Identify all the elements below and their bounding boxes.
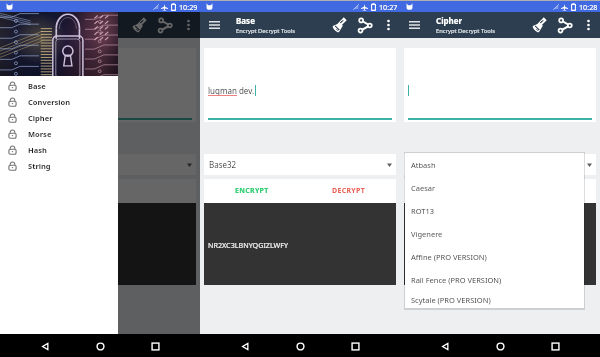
button[interactable]: Back: [435, 336, 455, 356]
staticText: Conversion: [28, 97, 71, 107]
staticText: ROT13: [411, 206, 435, 216]
button[interactable]: Back: [235, 336, 255, 356]
staticText: String: [28, 161, 51, 171]
staticText: Caesar: [411, 183, 436, 193]
staticText: Morse: [28, 129, 52, 139]
staticText: Encrypt Decrypt Tools: [236, 27, 296, 35]
staticText: Cipher: [436, 15, 463, 26]
button[interactable]: [100, 179, 196, 203]
staticText: Base32: [209, 159, 237, 170]
button[interactable]: Clear: [329, 15, 349, 35]
button[interactable]: DECRYPT: [500, 179, 596, 203]
button[interactable]: Open navigation drawer: [205, 16, 223, 34]
button[interactable]: Share: [555, 15, 575, 35]
button[interactable]: Vigenere: [405, 222, 584, 245]
button[interactable]: More options: [580, 17, 596, 33]
button[interactable]: String: [0, 158, 118, 174]
button[interactable]: Hash: [0, 142, 118, 158]
button[interactable]: ROT13: [405, 199, 584, 222]
button[interactable]: Share: [155, 15, 175, 35]
staticText: ENCRYPT: [235, 186, 269, 196]
staticText: 10:27: [379, 2, 398, 12]
button[interactable]: Clear: [529, 15, 549, 35]
button[interactable]: Back: [35, 336, 55, 356]
button[interactable]: Conversion: [0, 94, 118, 110]
staticText: Hash: [28, 145, 47, 155]
button[interactable]: Atbash: [405, 153, 584, 176]
button[interactable]: Clear: [129, 15, 149, 35]
button[interactable]: Base: [0, 78, 118, 94]
staticText: Rail Fence (PRO VERSION): [411, 275, 502, 285]
staticText: Affine (PRO VERSION): [411, 252, 487, 262]
button[interactable]: Home: [490, 336, 510, 356]
staticText: Scytale (PRO VERSION): [411, 295, 491, 305]
button[interactable]: Recents: [545, 336, 565, 356]
button[interactable]: ENCRYPT: [204, 179, 300, 203]
staticText: Encrypt Decrypt Tools: [436, 27, 496, 35]
button[interactable]: Rail Fence (PRO VERSION): [405, 268, 584, 291]
button[interactable]: Share: [355, 15, 375, 35]
staticText: Cipher: [28, 113, 53, 123]
staticText: Base: [36, 15, 55, 26]
staticText: Base: [236, 15, 255, 26]
button[interactable]: Home: [90, 336, 110, 356]
staticText: DECRYPT: [332, 186, 365, 196]
button[interactable]: Affine (PRO VERSION): [405, 245, 584, 268]
staticText: Base: [28, 81, 46, 91]
button[interactable]: Recents: [345, 336, 365, 356]
button[interactable]: Cipher: [0, 110, 118, 126]
button[interactable]: More options: [380, 17, 396, 33]
button[interactable]: Open navigation drawer: [405, 16, 423, 34]
staticText: Atbash: [411, 160, 436, 170]
staticText: luqman dev.: [208, 85, 255, 96]
staticText: Encrypt Decrypt Tools: [36, 27, 96, 35]
button[interactable]: Caesar: [405, 176, 584, 199]
button[interactable]: More options: [180, 17, 196, 33]
button[interactable]: Scytale (PRO VERSION): [405, 291, 584, 308]
button[interactable]: Morse: [0, 126, 118, 142]
staticText: Atbash: [409, 159, 436, 170]
button[interactable]: Open navigation drawer: [5, 16, 23, 34]
button[interactable]: Home: [290, 336, 310, 356]
staticText: NR2XC3LBNYQGIZLWFY: [208, 240, 289, 250]
staticText: Vigenere: [411, 229, 443, 239]
button[interactable]: DECRYPT: [300, 179, 396, 203]
staticText: 10:28: [579, 2, 598, 12]
staticText: 10:29: [179, 2, 198, 12]
button[interactable]: Recents: [145, 336, 165, 356]
button[interactable]: ENCRYPT: [404, 179, 500, 203]
